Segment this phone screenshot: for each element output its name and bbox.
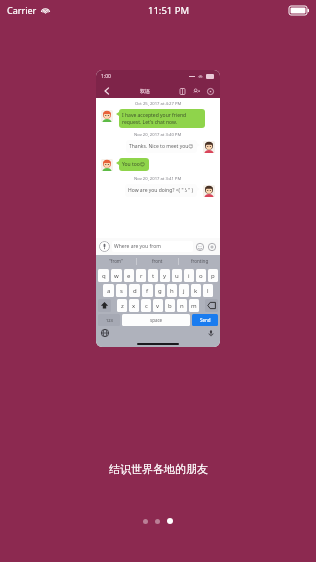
button[interactable]: a [103,284,114,297]
button[interactable]: Where are you from [112,241,193,252]
staticText: q [102,272,106,280]
button[interactable]: Backspace [205,299,218,312]
staticText: z [121,302,124,310]
button[interactable]: x [129,299,139,312]
staticText: d [133,287,137,295]
button[interactable]: More [205,86,215,96]
button[interactable]: How are you doing? <( " ʖ " ) [125,184,197,197]
button[interactable]: f [142,284,153,297]
staticText: i [188,272,190,280]
button[interactable]: space [122,314,190,326]
button[interactable]: fronting [179,255,220,267]
staticText: r [140,272,143,280]
staticText: c [145,302,148,310]
staticText: v [156,302,160,310]
staticText: space [150,317,163,323]
button[interactable]: h [167,284,177,297]
button[interactable]: Change keyboard [100,328,110,338]
button[interactable]: s [116,284,127,297]
staticText: o [199,272,203,280]
button[interactable]: 123 [98,314,120,326]
staticText: n [180,302,184,310]
staticText: h [170,287,174,295]
button[interactable]: Avatar [101,159,113,171]
staticText: "from" [109,258,123,264]
staticText: y [163,272,167,280]
staticText: 11:51 PM [148,4,190,17]
staticText: Thanks. Nice to meet you😊 [129,143,194,150]
staticText: p [211,272,215,280]
staticText: t [152,272,155,280]
button[interactable]: q [98,269,109,282]
button[interactable]: Thanks. Nice to meet you😊 [126,140,197,153]
staticText: You too😊 [122,161,146,168]
staticText: b [168,302,172,310]
button[interactable]: k [191,284,201,297]
staticText: w [114,272,119,280]
button[interactable]: Add [207,242,217,252]
staticText: Nov 20, 2017 at 3:41 PM [134,176,182,182]
button[interactable]: b [165,299,175,312]
staticText: I have accepted your friend request. Let… [122,112,202,125]
button[interactable]: front [137,255,178,267]
staticText: f [146,287,149,295]
button[interactable]: l [203,284,213,297]
button[interactable]: Emoji [195,242,205,252]
staticText: Carrier [7,4,37,16]
button[interactable]: j [179,284,189,297]
staticText: 结识世界各地的朋友 [109,462,208,476]
button[interactable]: y [160,269,170,282]
button[interactable]: Avatar [203,141,215,153]
button[interactable]: Add friend [191,86,201,96]
staticText: l [207,287,209,295]
button[interactable]: e [124,269,134,282]
button[interactable]: o [196,269,206,282]
staticText: front [152,258,163,264]
button[interactable]: Translate [177,86,187,96]
staticText: j [183,287,185,295]
button[interactable]: t [148,269,158,282]
staticText: 123 [106,318,113,323]
button[interactable]: c [141,299,151,312]
staticText: m [191,302,197,310]
staticText: u [175,272,179,280]
button[interactable]: w [111,269,122,282]
staticText: x [132,302,136,310]
button[interactable]: i [184,269,194,282]
button[interactable]: m [189,299,199,312]
button[interactable]: u [172,269,182,282]
staticText: Oct 25, 2017 at 4:27 PM [135,101,182,107]
staticText: 1:00 [101,73,111,80]
button[interactable]: r [136,269,146,282]
staticText: 双语 [140,88,150,94]
button[interactable]: v [153,299,163,312]
staticText: g [158,287,162,295]
staticText: fronting [191,258,209,264]
staticText: Where are you from [114,243,161,250]
button[interactable]: z [117,299,127,312]
button[interactable]: "from" [96,255,136,267]
staticText: s [120,287,123,295]
staticText: Nov 20, 2017 at 3:40 PM [134,132,182,138]
button[interactable]: Back [101,85,113,97]
staticText: How are you doing? <( " ʖ " ) [128,187,194,194]
staticText: Send [200,317,211,323]
staticText: k [194,287,198,295]
button[interactable]: Avatar [101,110,113,122]
button[interactable]: n [177,299,187,312]
button[interactable]: Voice input [99,241,110,252]
button[interactable]: p [208,269,218,282]
button[interactable]: Dictation [206,328,216,338]
button[interactable]: g [155,284,165,297]
button[interactable]: Avatar [203,185,215,197]
button[interactable]: I have accepted your friend request. Let… [119,109,205,128]
button[interactable]: Shift [98,299,111,312]
staticText: a [107,287,111,295]
button[interactable]: Send [192,314,218,326]
staticText: e [127,272,131,280]
button[interactable]: d [129,284,140,297]
button[interactable]: You too😊 [119,158,149,171]
